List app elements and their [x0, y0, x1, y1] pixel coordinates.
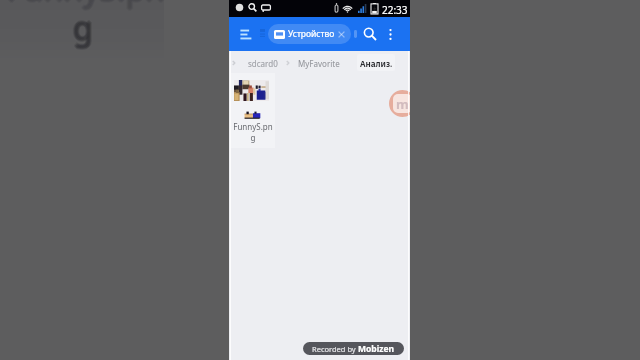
staticText: FunnyS.pn	[9, 0, 167, 11]
staticText: Устройство	[288, 28, 335, 40]
staticText: g	[72, 7, 92, 51]
button[interactable]: Устройство	[268, 24, 351, 44]
staticText: FunnyS.pn	[7, 0, 165, 13]
staticText: g	[73, 6, 93, 50]
button[interactable]: MyFavorite	[295, 57, 343, 70]
button[interactable]: Mobizen recorder	[389, 90, 410, 117]
staticText: Анализ.	[360, 58, 393, 69]
staticText: m	[396, 95, 409, 113]
staticText: FunnyS.pn	[7, 0, 165, 9]
button[interactable]: Search	[359, 17, 381, 51]
button[interactable]: Navigation menu	[235, 17, 256, 51]
staticText: g	[73, 8, 93, 52]
staticText: g	[71, 6, 91, 50]
button[interactable]: sdcard0	[245, 57, 281, 70]
button[interactable]: Анализ.	[357, 54, 395, 71]
staticText: FunnyS.pn	[6, 0, 164, 12]
staticText: FunnyS.pn	[6, 0, 164, 10]
staticText: FunnyS.pn	[5, 0, 163, 11]
staticText: Mobizen	[358, 343, 395, 355]
staticText: g	[74, 5, 94, 49]
staticText: FunnyS.pn	[8, 0, 166, 12]
staticText: Recorded by	[312, 344, 358, 354]
staticText: g	[73, 4, 93, 48]
staticText: FunnyS.png	[231, 121, 275, 143]
button[interactable]: More options	[381, 17, 399, 51]
staticText: g	[74, 7, 94, 51]
staticText: g	[72, 5, 92, 49]
button[interactable]: FunnyS.png	[231, 73, 275, 148]
staticText: 22:33	[382, 3, 408, 17]
staticText: g	[75, 6, 95, 50]
staticText: FunnyS.pn	[7, 0, 165, 11]
staticText: FunnyS.pn	[8, 0, 166, 10]
